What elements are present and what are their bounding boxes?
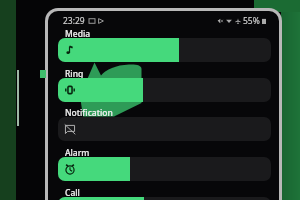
- button[interactable]: Call: [58, 197, 271, 200]
- staticText: Call: [65, 187, 80, 199]
- button[interactable]: Ring: [58, 78, 271, 102]
- other: Ring: [64, 84, 76, 96]
- staticText: Ring: [65, 68, 84, 80]
- staticText: Media: [65, 28, 91, 40]
- button[interactable]: Notification: [58, 117, 271, 141]
- other: Notification: [64, 123, 76, 135]
- staticText: Notification: [65, 107, 113, 119]
- staticText: 55%: [243, 15, 260, 27]
- button[interactable]: Media: [58, 38, 271, 62]
- other: Media: [64, 44, 76, 56]
- staticText: Alarm: [65, 147, 90, 159]
- staticText: 23:29: [63, 15, 85, 27]
- button[interactable]: Alarm: [58, 157, 271, 181]
- other: Alarm: [64, 163, 76, 175]
